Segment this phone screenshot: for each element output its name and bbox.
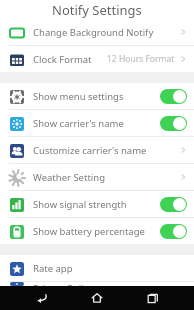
button[interactable]: Toggle (160, 89, 187, 104)
button[interactable]: Customize carrier's name (0, 137, 194, 163)
button[interactable]: Show carrier's name (0, 110, 194, 136)
staticText: 12 Hours Format (107, 53, 175, 65)
button[interactable]: Weather Setting (0, 164, 194, 190)
staticText: Show menu settings (33, 90, 124, 103)
button[interactable]: Show menu settings (0, 83, 194, 109)
staticText: Clock Format (33, 53, 92, 66)
staticText: Show signal strength (33, 198, 127, 211)
staticText: Notify Settings (52, 1, 142, 19)
button[interactable]: Back (28, 286, 56, 310)
staticText: Weather Setting (33, 171, 105, 184)
staticText: Privacy Policy (33, 282, 93, 286)
button[interactable]: Show battery percentage (0, 218, 194, 244)
button[interactable]: Recents (139, 286, 167, 310)
staticText: Change Background Notify (33, 26, 154, 39)
staticText: Show battery percentage (33, 225, 145, 238)
button[interactable]: Home (83, 286, 111, 310)
button[interactable]: Toggle (160, 224, 187, 239)
button[interactable]: Toggle (160, 116, 187, 131)
staticText: Customize carrier's name (33, 144, 147, 157)
button[interactable]: Show signal strength (0, 191, 194, 217)
staticText: Rate app (33, 262, 73, 275)
button[interactable]: Toggle (160, 197, 187, 212)
staticText: Show carrier's name (33, 117, 124, 130)
button[interactable]: Change Background Notify (0, 19, 194, 45)
button[interactable]: Rate app (0, 255, 194, 281)
button[interactable]: Privacy Policy (0, 282, 194, 286)
button[interactable]: Clock Format (0, 46, 194, 72)
